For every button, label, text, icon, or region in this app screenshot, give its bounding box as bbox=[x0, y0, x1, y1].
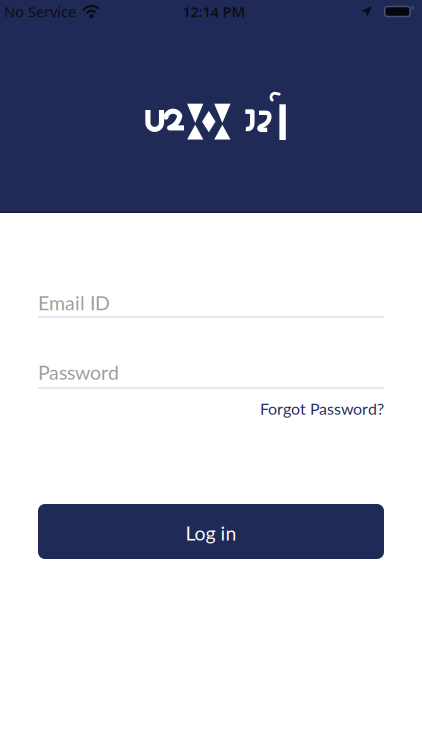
button[interactable]: Forgot Password? bbox=[260, 399, 384, 418]
staticText: No Service bbox=[4, 2, 76, 21]
button[interactable]: Email ID bbox=[38, 291, 384, 314]
staticText: 12:14 PM bbox=[182, 2, 245, 21]
staticText: Forgot Password? bbox=[260, 399, 384, 418]
button[interactable]: Password bbox=[38, 361, 384, 387]
staticText: Email ID bbox=[38, 291, 110, 314]
button[interactable]: Log in bbox=[38, 504, 384, 559]
staticText: Log in bbox=[185, 521, 236, 545]
staticText: Password bbox=[38, 361, 119, 384]
